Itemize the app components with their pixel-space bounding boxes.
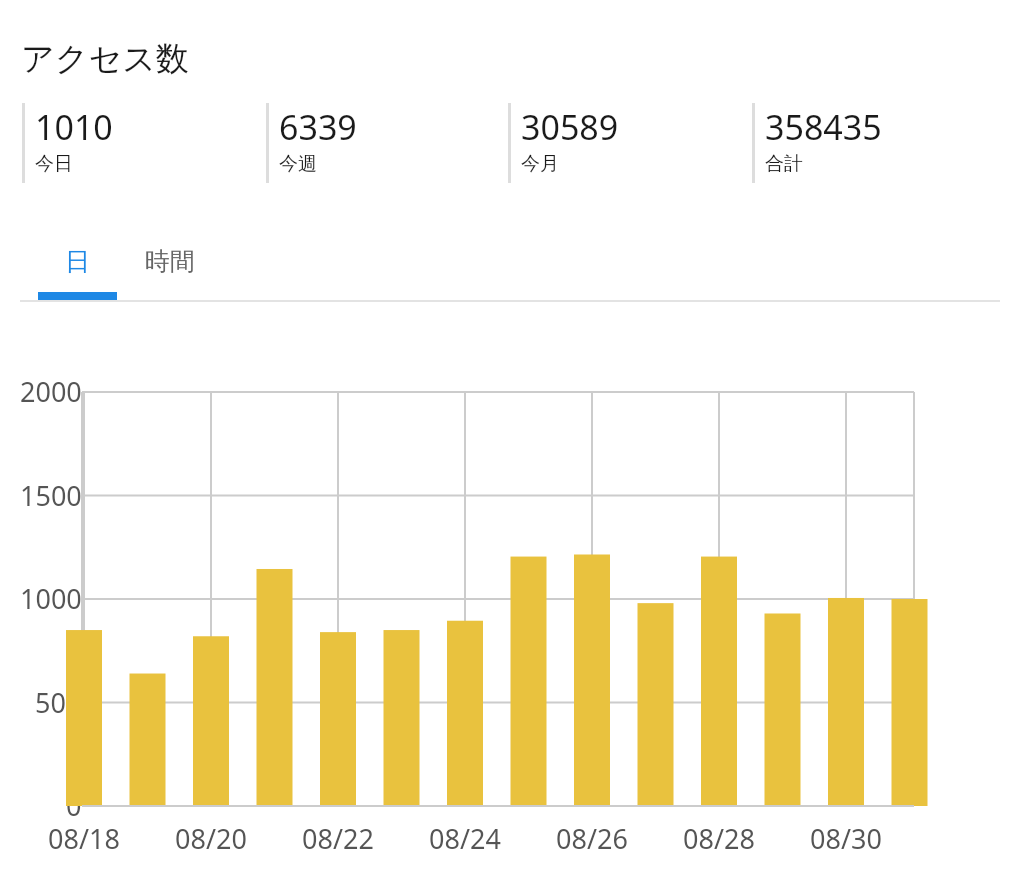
button[interactable]: 30589: [508, 103, 736, 187]
staticText: 今週: [279, 152, 317, 176]
staticText: 今月: [521, 152, 559, 176]
button[interactable]: 1010: [22, 103, 250, 187]
button[interactable]: 時間: [117, 222, 223, 300]
staticText: 08/18: [48, 820, 120, 857]
staticText: 今日: [35, 152, 73, 176]
staticText: 0: [66, 787, 82, 824]
staticText: 08/20: [175, 820, 247, 857]
staticText: 08/22: [302, 820, 374, 857]
button[interactable]: 358435: [752, 103, 980, 187]
staticText: 500: [35, 684, 82, 721]
staticText: アクセス数: [21, 38, 190, 80]
staticText: 08/28: [683, 820, 755, 857]
staticText: 時間: [145, 246, 195, 277]
button[interactable]: 日: [38, 222, 117, 300]
staticText: 1500: [20, 477, 82, 514]
staticText: 1010: [35, 104, 113, 150]
staticText: 08/26: [556, 820, 628, 857]
staticText: 08/30: [810, 820, 882, 857]
staticText: 6339: [279, 104, 357, 150]
staticText: 2000: [20, 373, 82, 410]
button[interactable]: 6339: [266, 103, 494, 187]
staticText: 1000: [20, 580, 82, 617]
staticText: 358435: [765, 104, 882, 150]
staticText: 合計: [765, 152, 803, 176]
staticText: 日: [65, 246, 90, 277]
staticText: 30589: [521, 104, 619, 150]
staticText: 08/24: [429, 820, 501, 857]
